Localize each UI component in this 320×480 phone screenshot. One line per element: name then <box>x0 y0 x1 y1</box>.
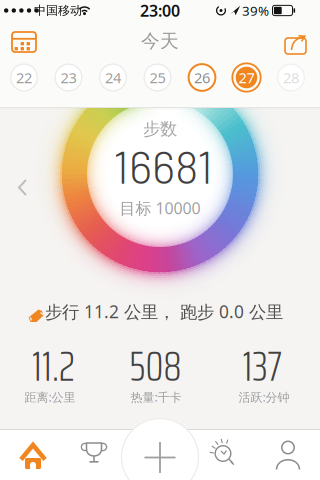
staticText: 步行 11.2 公里， 跑步 0.0 公里 <box>45 300 283 323</box>
staticText: 23:00 <box>140 0 180 21</box>
button[interactable]: Calendar <box>0 0 320 480</box>
button[interactable]: 26 <box>0 0 320 480</box>
staticText: 27 <box>238 68 254 87</box>
staticText: 中国移动 <box>34 3 82 18</box>
staticText: 22 <box>16 68 32 87</box>
staticText: 28 <box>283 68 299 87</box>
staticText: 26 <box>194 68 210 87</box>
button[interactable]: Home <box>0 0 320 480</box>
staticText: 16681 <box>113 138 213 193</box>
button[interactable]: Profile <box>0 0 320 480</box>
staticText: 目标 10000 <box>119 197 200 219</box>
button[interactable]: Tips <box>0 0 320 480</box>
staticText: 步数 <box>143 118 177 140</box>
staticText: 11.2 <box>32 332 75 400</box>
button[interactable]: 23 <box>0 0 320 480</box>
staticText: 24 <box>105 68 121 87</box>
button[interactable]: Achievements <box>0 0 320 480</box>
button[interactable]: Add <box>0 0 320 480</box>
staticText: 137 <box>242 332 282 400</box>
staticText: 今天 <box>141 29 179 52</box>
button[interactable]: 24 <box>0 0 320 480</box>
button[interactable]: 22 <box>0 0 320 480</box>
staticText: 39% <box>242 2 269 19</box>
button[interactable]: Share <box>0 0 320 480</box>
staticText: 23 <box>60 68 76 87</box>
button[interactable]: 28 <box>0 0 320 480</box>
staticText: 508 <box>129 332 181 400</box>
staticText: 距离:公里 <box>24 389 75 405</box>
button[interactable]: 27 <box>0 0 320 480</box>
button[interactable]: 25 <box>0 0 320 480</box>
staticText: 活跃:分钟 <box>238 389 289 405</box>
staticText: 热量:千卡 <box>130 389 181 405</box>
staticText: 25 <box>149 68 165 87</box>
button[interactable]: Previous <box>0 0 320 480</box>
